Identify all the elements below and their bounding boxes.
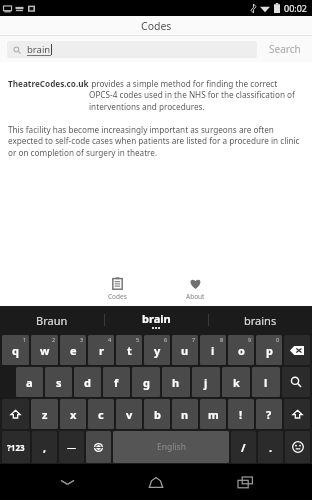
staticText: s xyxy=(56,375,62,390)
staticText: 6 xyxy=(164,336,168,343)
staticText: Codes xyxy=(141,19,172,33)
button[interactable]: r xyxy=(88,335,114,365)
button[interactable]: — xyxy=(59,431,84,463)
staticText: z xyxy=(42,407,48,422)
staticText: q xyxy=(12,343,19,358)
button[interactable]: i xyxy=(200,335,226,365)
button[interactable]: o xyxy=(228,335,254,365)
staticText: brains xyxy=(244,313,277,328)
button[interactable]: Backspace xyxy=(284,335,310,365)
button[interactable]: Search xyxy=(265,39,305,59)
staticText: About xyxy=(186,292,205,301)
staticText: 9 xyxy=(248,336,252,343)
button[interactable]: , xyxy=(32,431,57,463)
staticText: y xyxy=(154,343,161,358)
staticText: o xyxy=(238,343,245,358)
staticText: b xyxy=(154,407,161,422)
button[interactable]: / xyxy=(231,431,256,463)
staticText: 2 xyxy=(52,336,56,343)
button[interactable]: x xyxy=(60,399,86,429)
staticText: w xyxy=(40,343,50,358)
button[interactable]: brain xyxy=(105,306,208,334)
staticText: e xyxy=(70,343,77,358)
staticText: 0 xyxy=(276,336,280,343)
button[interactable]: Shift xyxy=(2,399,29,429)
button[interactable]: v xyxy=(116,399,142,429)
staticText: 5 xyxy=(136,336,140,343)
button[interactable]: h xyxy=(162,367,190,397)
staticText: ! xyxy=(239,407,243,422)
staticText: l xyxy=(264,375,268,390)
button[interactable]: b xyxy=(144,399,170,429)
button[interactable]: Shift xyxy=(284,399,310,429)
staticText: p xyxy=(266,343,273,358)
button[interactable]: u xyxy=(172,335,198,365)
staticText: 4 xyxy=(108,336,112,343)
button[interactable]: l xyxy=(252,367,280,397)
staticText: d xyxy=(84,375,91,390)
button[interactable]: f xyxy=(103,367,130,397)
staticText: ?123 xyxy=(7,442,25,453)
button[interactable]: English xyxy=(113,431,229,463)
button[interactable]: n xyxy=(172,399,198,429)
staticText: Search xyxy=(269,42,301,56)
button[interactable]: s xyxy=(45,367,72,397)
staticText: This facility has become increasingly im… xyxy=(8,124,304,159)
button[interactable]: brain xyxy=(7,41,257,58)
button[interactable]: About xyxy=(156,272,234,306)
staticText: t xyxy=(127,343,132,358)
button[interactable]: g xyxy=(132,367,160,397)
staticText: i xyxy=(211,343,215,358)
staticText: m xyxy=(208,407,219,422)
button[interactable]: . xyxy=(258,431,283,463)
staticText: 7 xyxy=(192,336,196,343)
staticText: v xyxy=(126,407,133,422)
button[interactable]: ? xyxy=(256,399,282,429)
button[interactable]: Codes xyxy=(78,272,156,306)
staticText: j xyxy=(204,375,208,390)
button[interactable]: Hide keyboard xyxy=(45,464,89,500)
button[interactable]: Emoji xyxy=(285,431,310,463)
staticText: TheatreCodes.co.uk xyxy=(8,78,89,89)
button[interactable]: k xyxy=(222,367,250,397)
staticText: brain xyxy=(27,43,51,56)
staticText: x xyxy=(70,407,77,422)
staticText: , xyxy=(43,440,47,455)
button[interactable]: Braun xyxy=(0,306,104,334)
staticText: Braun xyxy=(36,313,68,328)
staticText: 1 xyxy=(23,336,27,343)
staticText: — xyxy=(67,441,77,453)
staticText: a xyxy=(26,375,33,390)
button[interactable]: y xyxy=(144,335,170,365)
button[interactable]: a xyxy=(16,367,43,397)
button[interactable]: t xyxy=(116,335,142,365)
staticText: c xyxy=(98,407,104,422)
button[interactable]: m xyxy=(200,399,226,429)
button[interactable]: d xyxy=(74,367,101,397)
button[interactable]: j xyxy=(192,367,220,397)
button[interactable]: z xyxy=(31,399,58,429)
button[interactable]: Home xyxy=(134,464,178,500)
staticText: English xyxy=(157,441,186,453)
staticText: h xyxy=(172,375,180,390)
button[interactable]: q xyxy=(2,335,29,365)
button[interactable]: Change language xyxy=(86,431,111,463)
button[interactable]: e xyxy=(60,335,86,365)
button[interactable]: Search xyxy=(282,367,310,397)
button[interactable]: p xyxy=(256,335,282,365)
staticText: provides a simple method for finding the… xyxy=(89,78,304,113)
staticText: n xyxy=(181,407,189,422)
button[interactable]: ?123 xyxy=(2,431,30,463)
staticText: 3 xyxy=(80,336,84,343)
button[interactable]: ! xyxy=(228,399,254,429)
button[interactable]: c xyxy=(88,399,114,429)
button[interactable]: w xyxy=(31,335,58,365)
staticText: g xyxy=(143,375,150,390)
staticText: u xyxy=(181,343,189,358)
button[interactable]: Recents xyxy=(223,464,267,500)
staticText: 8 xyxy=(220,336,224,343)
staticText: 00:02 xyxy=(284,2,308,14)
staticText: . xyxy=(269,440,273,455)
staticText: r xyxy=(99,343,104,358)
button[interactable]: brains xyxy=(209,306,312,334)
